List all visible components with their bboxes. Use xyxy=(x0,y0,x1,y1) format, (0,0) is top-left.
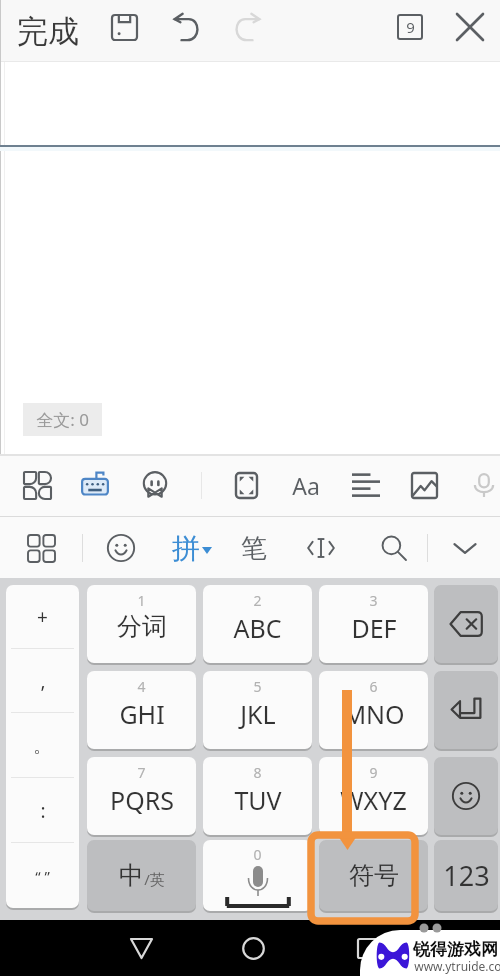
staticText: MNO xyxy=(343,697,405,731)
button[interactable]: 1 xyxy=(87,585,196,663)
button[interactable]: : xyxy=(6,778,79,843)
button[interactable]: Aa xyxy=(286,465,326,505)
button[interactable]: 8 xyxy=(203,757,312,835)
staticText: “ ” xyxy=(35,866,50,886)
staticText: /英 xyxy=(144,869,165,889)
staticText: 全文: 0 xyxy=(36,408,89,431)
staticText: 完成 xyxy=(17,12,79,51)
staticText: 123 xyxy=(443,857,490,894)
staticText: + xyxy=(37,604,48,630)
staticText: 1 xyxy=(137,591,146,610)
button[interactable]: + xyxy=(6,585,79,649)
staticText: 分词 xyxy=(117,611,167,642)
button[interactable]: Redo xyxy=(228,7,268,47)
button[interactable]: Search xyxy=(374,528,414,568)
button[interactable]: Undo xyxy=(166,7,206,47)
staticText: 8 xyxy=(253,763,262,782)
button[interactable]: 2 xyxy=(203,585,312,663)
staticText: 符号 xyxy=(349,860,399,891)
staticText: 4 xyxy=(137,677,146,696)
button[interactable]: Save xyxy=(104,7,144,47)
button[interactable]: Emoji xyxy=(101,528,141,568)
staticText: 笔 xyxy=(241,532,267,565)
button[interactable]: 拼 xyxy=(172,528,212,568)
staticText: www.ytruide.com xyxy=(414,958,500,974)
staticText: 9 xyxy=(369,763,378,782)
button[interactable]: Sticker xyxy=(135,465,175,505)
staticText: GHI xyxy=(119,697,165,731)
staticText: JKL xyxy=(240,697,276,731)
staticText: 9 xyxy=(406,17,415,37)
button[interactable]: 6 xyxy=(319,671,428,749)
button[interactable]: Voice xyxy=(464,465,500,505)
button[interactable]: Close xyxy=(450,7,490,47)
staticText: 中 xyxy=(119,860,144,891)
button[interactable]: Collapse xyxy=(445,528,485,568)
button[interactable]: Align xyxy=(346,465,386,505)
button[interactable]: , xyxy=(6,649,79,713)
button[interactable]: Space / voice xyxy=(203,840,312,911)
staticText: 锐得游戏网 xyxy=(413,939,498,960)
button[interactable]: Home xyxy=(233,928,273,968)
staticText: , xyxy=(40,668,46,694)
staticText: PQRS xyxy=(110,783,174,817)
button[interactable]: Grid xyxy=(21,528,61,568)
button[interactable]: Page count xyxy=(390,7,430,47)
button[interactable]: Apps xyxy=(17,465,57,505)
staticText: ABC xyxy=(233,611,282,645)
staticText: 6 xyxy=(369,677,378,696)
staticText: WXYZ xyxy=(340,783,407,817)
staticText: Aa xyxy=(292,470,320,501)
button[interactable]: enter xyxy=(434,671,498,749)
button[interactable]: 全文: 0 xyxy=(23,403,102,436)
button[interactable]: 符号 xyxy=(319,840,428,911)
button[interactable]: 5 xyxy=(203,671,312,749)
button[interactable]: Cursor xyxy=(301,528,341,568)
button[interactable]: “ ” xyxy=(6,843,79,908)
button[interactable]: 完成 xyxy=(12,6,84,56)
button[interactable]: 3 xyxy=(319,585,428,663)
button[interactable]: 9 xyxy=(319,757,428,835)
button[interactable]: emoji xyxy=(434,757,498,835)
staticText: DEF xyxy=(351,611,397,645)
staticText: 7 xyxy=(137,763,146,782)
staticText: 2 xyxy=(253,591,262,610)
staticText: 5 xyxy=(253,677,262,696)
staticText: 拼 xyxy=(172,531,200,566)
staticText: 3 xyxy=(369,591,378,610)
button[interactable]: 。 xyxy=(6,713,79,778)
button[interactable]: 4 xyxy=(87,671,196,749)
staticText: TUV xyxy=(234,783,282,817)
button[interactable]: Image xyxy=(404,465,444,505)
button[interactable]: 中 xyxy=(87,840,196,911)
button[interactable]: del xyxy=(434,585,498,663)
button[interactable]: Keyboard xyxy=(75,465,115,505)
button[interactable]: Fullscreen xyxy=(226,465,266,505)
button[interactable]: 笔 xyxy=(234,528,274,568)
button[interactable]: 7 xyxy=(87,757,196,835)
staticText: : xyxy=(40,798,46,824)
staticText: 。 xyxy=(33,734,52,758)
button[interactable]: 123 xyxy=(434,840,498,911)
button[interactable]: Back xyxy=(121,928,161,968)
button[interactable]: Recents xyxy=(347,928,387,968)
staticText: 0 xyxy=(253,845,262,864)
